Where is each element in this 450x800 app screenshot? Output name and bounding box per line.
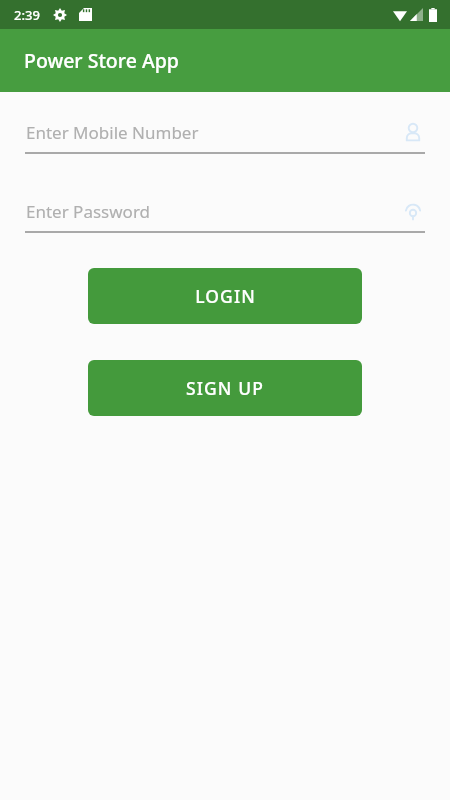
staticText: LOGIN — [195, 284, 256, 308]
other: Account — [401, 120, 425, 144]
staticText: Power Store App — [24, 47, 179, 74]
button[interactable]: Enter Mobile Number — [25, 120, 425, 154]
button[interactable]: Enter Password — [25, 199, 425, 233]
other: Password — [401, 199, 425, 223]
staticText: 2:39 — [14, 6, 40, 24]
staticText: Enter Password — [26, 200, 401, 223]
staticText: SIGN UP — [186, 376, 264, 400]
button[interactable]: SIGN UP — [88, 360, 362, 416]
staticText: Enter Mobile Number — [26, 121, 401, 144]
button[interactable]: LOGIN — [88, 268, 362, 324]
